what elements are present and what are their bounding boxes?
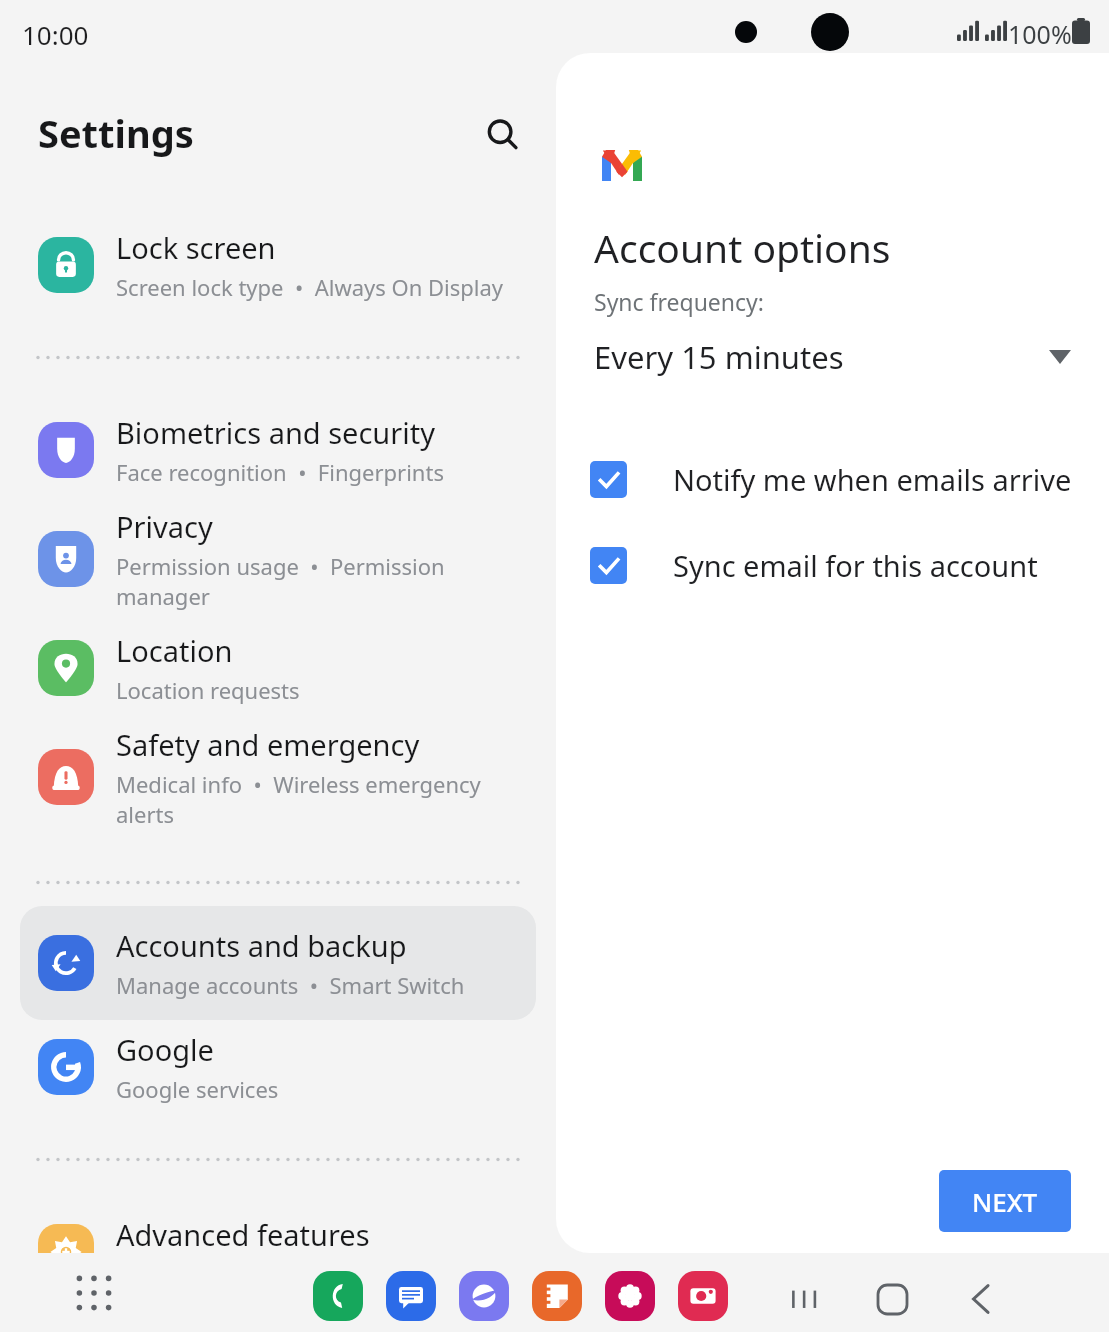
- button[interactable]: Lock screen: [0, 218, 556, 312]
- button[interactable]: internet: [459, 1271, 509, 1321]
- button[interactable]: Recents: [772, 1267, 836, 1331]
- button[interactable]: NEXT: [939, 1170, 1071, 1232]
- button[interactable]: Back: [949, 1267, 1013, 1331]
- button[interactable]: Search: [470, 102, 536, 168]
- button[interactable]: gallery: [605, 1271, 655, 1321]
- button[interactable]: messages: [386, 1271, 436, 1321]
- staticText: Permission usage • Permission manager: [116, 551, 542, 611]
- button[interactable]: Privacy: [0, 497, 556, 621]
- staticText: Biometrics and security: [116, 413, 436, 452]
- button[interactable]: Every 15 minutes: [586, 326, 1081, 388]
- button[interactable]: Biometrics and security: [0, 403, 556, 497]
- staticText: Screen lock type • Always On Display: [116, 272, 504, 302]
- staticText: 100%: [1008, 17, 1072, 51]
- button[interactable]: Accounts and backup: [20, 906, 536, 1020]
- staticText: Location: [116, 631, 233, 670]
- staticText: Manage accounts • Smart Switch: [116, 970, 465, 1000]
- button[interactable]: Advanced features: [0, 1205, 556, 1299]
- staticText: Android Auto • Labs • Bixby Routines: [116, 1259, 516, 1289]
- staticText: Accounts and backup: [116, 926, 407, 965]
- staticText: Google services: [116, 1074, 279, 1104]
- staticText: Google: [116, 1030, 214, 1069]
- staticText: Privacy: [116, 507, 213, 546]
- button[interactable]: Google: [0, 1020, 556, 1114]
- staticText: Notify me when emails arrive: [673, 460, 1072, 499]
- staticText: 10:00: [22, 17, 89, 52]
- button[interactable]: phone: [313, 1271, 363, 1321]
- staticText: Location requests: [116, 675, 300, 705]
- button[interactable]: camera: [678, 1271, 728, 1321]
- staticText: Sync email for this account: [673, 546, 1038, 585]
- staticText: NEXT: [972, 1184, 1038, 1219]
- button[interactable]: Location: [0, 621, 556, 715]
- staticText: Settings: [38, 107, 194, 159]
- staticText: Account options: [594, 221, 891, 274]
- staticText: Lock screen: [116, 228, 276, 267]
- staticText: Face recognition • Fingerprints: [116, 457, 444, 487]
- staticText: Medical info • Wireless emergency alerts: [116, 769, 542, 829]
- button[interactable]: Apps: [62, 1261, 126, 1325]
- button[interactable]: Safety and emergency: [0, 715, 556, 839]
- button[interactable]: Sync email for this account: [580, 534, 1090, 596]
- button[interactable]: notes: [532, 1271, 582, 1321]
- staticText: Every 15 minutes: [594, 336, 844, 378]
- staticText: Safety and emergency: [116, 725, 420, 764]
- button[interactable]: Notify me when emails arrive: [580, 448, 1090, 510]
- button[interactable]: Home: [860, 1267, 924, 1331]
- staticText: Sync frequency:: [594, 286, 764, 317]
- staticText: Advanced features: [116, 1215, 370, 1254]
